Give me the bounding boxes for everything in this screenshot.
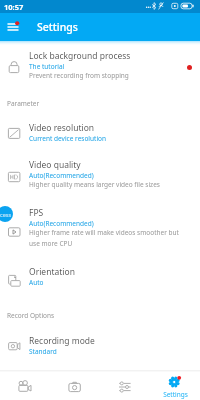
button[interactable]: Orientation [0, 263, 200, 289]
staticText: Auto(Recommended) [29, 171, 94, 180]
button[interactable]: Lock background process [0, 47, 200, 83]
staticText: Current device resolution [29, 134, 107, 143]
button[interactable]: Camera [50, 370, 100, 400]
staticText: Video resolution [29, 122, 95, 134]
staticText: Settings [163, 390, 188, 399]
staticText: Higher frame rate will make videos smoot… [29, 228, 191, 248]
staticText: Auto [29, 278, 44, 287]
button[interactable]: Filters [100, 370, 150, 400]
staticText: The tutorial [29, 62, 65, 71]
staticText: Orientation [29, 266, 75, 278]
button[interactable]: Recording mode [0, 332, 200, 358]
button[interactable]: FPS [0, 204, 200, 249]
staticText: Recording mode [29, 335, 95, 347]
staticText: Record Options [7, 311, 55, 320]
staticText: 10:57 [4, 2, 24, 12]
button[interactable]: Video camera [0, 370, 50, 400]
staticText: Video quality [29, 159, 81, 171]
staticText: Prevent recording from stopping [29, 71, 129, 80]
staticText: Settings [37, 20, 78, 34]
staticText: Standard [29, 347, 57, 356]
staticText: FPS [29, 207, 44, 219]
staticText: Auto(Recommended) [29, 219, 94, 228]
staticText: Higher quality means larger video file s… [29, 180, 160, 189]
button[interactable]: Menu [1, 15, 25, 39]
button[interactable]: Video resolution [0, 119, 200, 145]
staticText: Lock background process [29, 50, 131, 62]
button[interactable]: Scroll indicator [0, 206, 13, 222]
staticText: cess [0, 211, 12, 218]
button[interactable]: Settings [150, 370, 200, 400]
staticText: Parameter [7, 99, 40, 108]
button[interactable]: Video quality [0, 156, 200, 192]
